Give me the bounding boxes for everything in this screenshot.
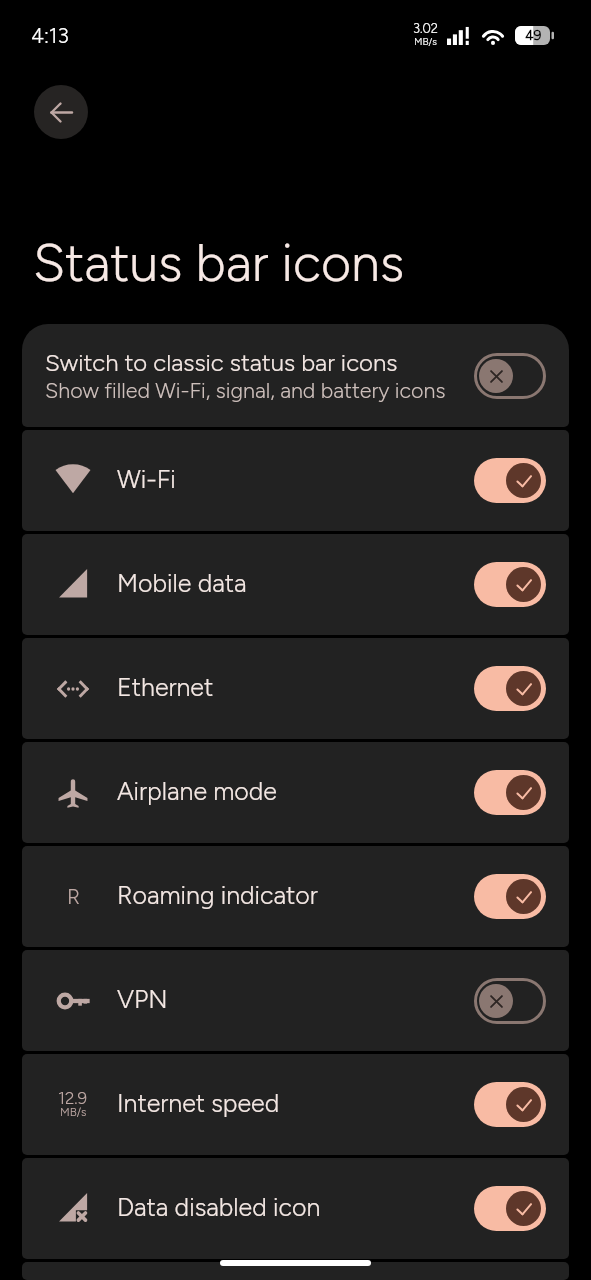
staticText: Status bar icons [33, 232, 405, 294]
button[interactable]: Ethernet [22, 638, 569, 739]
staticText: 12.9 [58, 1088, 88, 1108]
button[interactable]: Toggle on [474, 874, 546, 919]
staticText: VPN [117, 984, 168, 1014]
button[interactable]: Toggle on [474, 562, 546, 607]
staticText: R [67, 884, 80, 909]
staticText: Internet speed [117, 1088, 280, 1118]
staticText: Mobile data [117, 568, 247, 598]
button[interactable]: Airplane mode [22, 742, 569, 843]
button[interactable]: Mobile data [22, 534, 569, 635]
button[interactable]: Toggle on [474, 666, 546, 711]
button[interactable]: Toggle off [474, 353, 546, 399]
staticText: Switch to classic status bar icons [45, 348, 398, 377]
button[interactable]: Back [34, 85, 88, 139]
button[interactable]: R [22, 846, 569, 947]
button[interactable]: Data disabled icon [22, 1158, 569, 1259]
staticText: 4:13 [31, 23, 69, 48]
staticText: MB/s [414, 35, 437, 47]
button[interactable]: Toggle off [474, 978, 546, 1024]
button[interactable]: 12.9 [22, 1054, 569, 1155]
button[interactable] [22, 1262, 569, 1280]
button[interactable]: Wi-Fi [22, 430, 569, 531]
button[interactable]: Toggle on [474, 770, 546, 815]
button[interactable]: Switch to classic status bar icons [22, 324, 569, 427]
staticText: Ethernet [117, 672, 214, 702]
staticText: Data disabled icon [117, 1192, 321, 1222]
staticText: Roaming indicator [117, 880, 318, 910]
staticText: 3.02 [413, 21, 438, 37]
staticText: 49 [525, 27, 542, 44]
button[interactable]: Toggle on [474, 1186, 546, 1231]
button[interactable]: Toggle on [474, 458, 546, 503]
staticText: MB/s [60, 1105, 87, 1119]
staticText: Wi-Fi [117, 464, 176, 494]
staticText: Airplane mode [117, 776, 277, 806]
button[interactable]: Toggle on [474, 1082, 546, 1127]
staticText: Show filled Wi-Fi, signal, and battery i… [45, 378, 446, 404]
button[interactable]: VPN [22, 950, 569, 1051]
